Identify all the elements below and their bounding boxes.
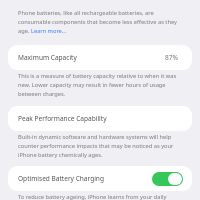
staticText: Built-in dynamic software and hardware s… — [18, 132, 182, 159]
button[interactable]: Maximum Capacity — [8, 45, 192, 70]
staticText: Maximum Capacity — [18, 53, 77, 62]
staticText: To reduce battery ageing, iPhone learns … — [18, 192, 182, 200]
button[interactable]: Optimised Battery Charging — [8, 166, 192, 191]
button[interactable]: Peak Performance Capability — [8, 106, 192, 131]
staticText: Phone batteries, like all rechargeable b… — [18, 8, 182, 35]
staticText: 87% — [165, 53, 178, 62]
staticText: Optimised Battery Charging — [18, 174, 104, 183]
button[interactable]: Optimised Battery Charging, on — [152, 172, 183, 186]
staticText: Peak Performance Capability — [18, 114, 107, 123]
staticText: This is a measure of battery capacity re… — [18, 71, 182, 98]
